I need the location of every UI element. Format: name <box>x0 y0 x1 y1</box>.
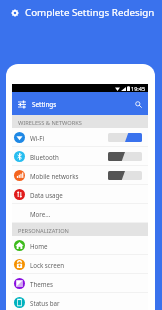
button[interactable]: Mobile networks <box>12 166 148 185</box>
staticText: Mobile networks <box>30 172 79 180</box>
button[interactable] <box>108 152 142 161</box>
button[interactable]: Themes <box>12 274 148 293</box>
staticText: Status bar <box>30 299 60 307</box>
button[interactable]: More... <box>12 204 148 223</box>
staticText: Data usage <box>30 191 63 199</box>
staticText: PERSONALIZATION <box>18 227 69 235</box>
staticText: Complete Settings Redesign <box>25 6 155 19</box>
button[interactable]: Data usage <box>12 185 148 204</box>
button[interactable]: Menu <box>15 97 28 110</box>
button[interactable]: Home <box>12 236 148 255</box>
staticText: WIRELESS & NETWORKS <box>18 119 82 127</box>
button[interactable]: Lock screen <box>12 255 148 274</box>
staticText: Wi-Fi <box>30 134 45 142</box>
button[interactable]: Bluetooth <box>12 147 148 166</box>
staticText: Themes <box>30 280 53 288</box>
button[interactable]: Status bar <box>12 293 148 310</box>
staticText: Lock screen <box>30 261 65 269</box>
button[interactable] <box>108 171 142 180</box>
staticText: More... <box>30 210 51 218</box>
staticText: Settings <box>32 100 57 109</box>
button[interactable]: Search <box>132 97 145 110</box>
staticText: 19:45 <box>131 85 146 92</box>
button[interactable]: Wi-Fi <box>12 128 148 147</box>
staticText: Home <box>30 242 48 250</box>
staticText: Bluetooth <box>30 153 59 161</box>
button[interactable] <box>108 133 142 142</box>
